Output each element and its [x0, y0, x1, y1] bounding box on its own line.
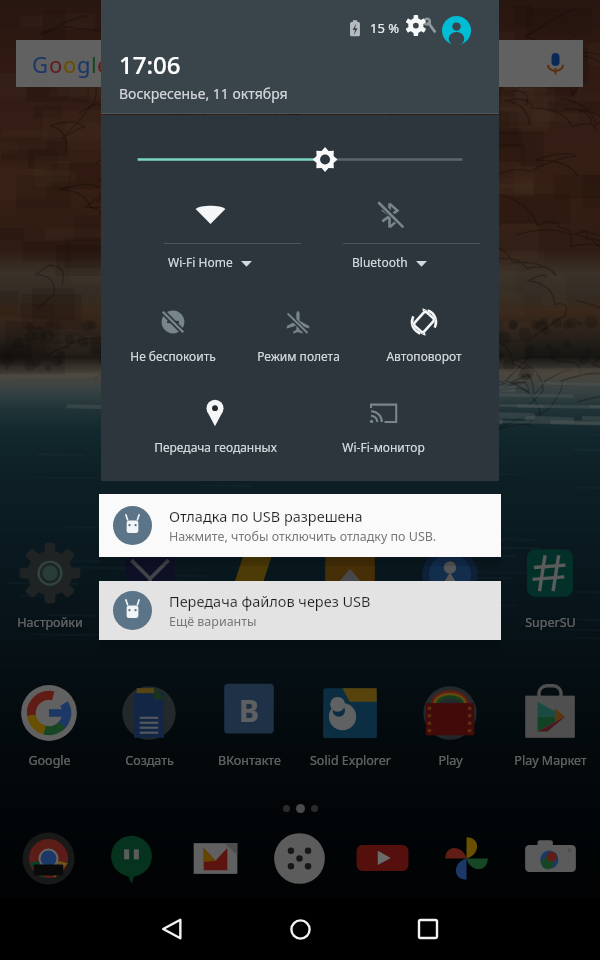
- staticText: Создать: [125, 752, 174, 769]
- button[interactable]: SuperSU: [502, 544, 598, 631]
- staticText: Режим полета: [257, 348, 340, 364]
- button[interactable]: G: [16, 40, 583, 87]
- button[interactable]: Chrome: [16, 826, 80, 890]
- button[interactable]: В: [201, 682, 297, 769]
- button[interactable]: User: [442, 16, 471, 45]
- staticText: o: [63, 49, 77, 79]
- button[interactable]: Телеграм: [402, 544, 498, 631]
- staticText: В: [239, 690, 259, 731]
- staticText: Передача геоданных: [154, 439, 277, 455]
- button[interactable]: Settings: [404, 13, 437, 46]
- staticText: Передача файлов через USB: [169, 591, 371, 611]
- button[interactable]: Автоповорот: [364, 307, 484, 364]
- staticText: Ещё варианты: [169, 613, 257, 630]
- staticText: Яндекс: [129, 614, 172, 631]
- staticText: Wi-Fi-монитор: [342, 439, 425, 455]
- button[interactable]: Не беспокоить: [113, 307, 233, 364]
- staticText: SuperSU: [525, 614, 576, 631]
- button[interactable]: Wi-Fi-монитор: [303, 398, 463, 455]
- button[interactable]: Яндекс: [102, 544, 198, 631]
- staticText: g: [77, 49, 91, 79]
- staticText: Wi-Fi Home: [168, 254, 233, 270]
- button[interactable]: Photos: [434, 826, 498, 890]
- staticText: Play: [438, 752, 463, 769]
- button[interactable]: All apps: [267, 826, 331, 890]
- staticText: Google: [28, 752, 71, 769]
- staticText: Заметки: [225, 614, 276, 631]
- button[interactable]: YouTube: [350, 826, 414, 890]
- staticText: 15 %: [370, 19, 400, 37]
- staticText: Автоповорот: [386, 348, 462, 364]
- button[interactable]: Play Маркет: [502, 682, 598, 769]
- button[interactable]: Передача файлов через USB: [99, 581, 501, 640]
- staticText: ВКонтакте: [218, 752, 281, 769]
- button[interactable]: Play: [402, 682, 498, 769]
- staticText: Не беспокоить: [130, 348, 216, 364]
- staticText: Bluetooth: [352, 254, 408, 270]
- staticText: o: [49, 49, 63, 79]
- button[interactable]: Camera: [518, 826, 582, 890]
- button[interactable]: Hangouts: [99, 826, 163, 890]
- button[interactable]: Wi-Fi Home: [120, 199, 300, 270]
- button[interactable]: Создать: [101, 682, 197, 769]
- button[interactable]: Почта: [302, 544, 398, 631]
- button[interactable]: Google: [1, 682, 97, 769]
- button[interactable]: Solid Explorer: [302, 682, 398, 769]
- staticText: l: [91, 49, 97, 79]
- staticText: Настройки: [17, 614, 83, 631]
- staticText: G: [32, 49, 49, 79]
- button[interactable]: Отладка по USB разрешена: [99, 494, 501, 557]
- button[interactable]: Back: [108, 898, 236, 960]
- button[interactable]: Gmail: [183, 826, 247, 890]
- button[interactable]: Заметки: [202, 544, 298, 631]
- staticText: Отладка по USB разрешена: [169, 506, 363, 526]
- button[interactable]: Режим полета: [238, 307, 358, 364]
- button[interactable]: Bluetooth: [299, 199, 479, 270]
- button[interactable]: Передача геоданных: [135, 398, 295, 455]
- staticText: Воскресенье, 11 октября: [119, 84, 288, 103]
- staticText: Нажмите, чтобы отключить отладку по USB.: [169, 528, 437, 545]
- staticText: 17:06: [119, 48, 181, 81]
- staticText: Play Маркет: [514, 752, 587, 769]
- staticText: e: [97, 49, 110, 79]
- button[interactable]: Recents: [364, 898, 492, 960]
- button[interactable]: Настройки: [2, 544, 98, 631]
- button[interactable]: Home: [236, 898, 364, 960]
- staticText: Solid Explorer: [310, 752, 391, 769]
